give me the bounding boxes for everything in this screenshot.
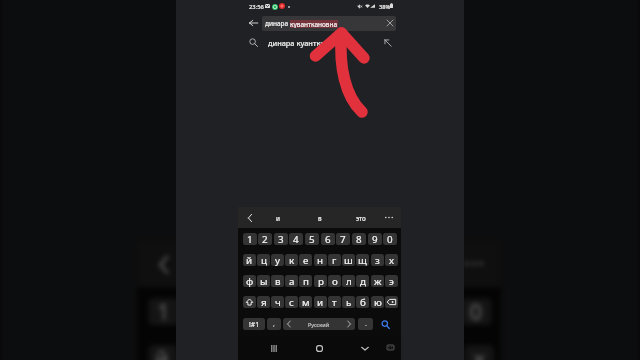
button[interactable]: р: [314, 275, 327, 287]
staticText: ш: [344, 254, 353, 266]
button[interactable]: й: [243, 254, 256, 266]
staticText: 4: [293, 233, 299, 245]
button[interactable]: г: [338, 345, 367, 360]
button[interactable]: п: [299, 275, 312, 287]
button[interactable]: з: [371, 254, 384, 266]
button[interactable]: ц: [257, 254, 270, 266]
button[interactable]: м: [299, 296, 312, 308]
button[interactable]: 1: [148, 298, 179, 325]
button[interactable]: ,: [267, 318, 281, 330]
button[interactable]: 7: [356, 298, 387, 325]
staticText: э: [389, 275, 394, 287]
button[interactable]: Space, Russian: [283, 318, 355, 330]
button[interactable]: Recent apps: [267, 341, 281, 355]
button[interactable]: 2: [258, 233, 272, 245]
button[interactable]: 3: [217, 298, 249, 325]
staticText: это: [400, 256, 423, 274]
button[interactable]: г: [328, 254, 341, 266]
button[interactable]: я: [257, 296, 270, 308]
button[interactable]: в: [271, 275, 284, 287]
button[interactable]: 6: [322, 298, 353, 325]
button[interactable]: у: [211, 345, 240, 360]
button[interactable]: о: [328, 275, 341, 287]
button[interactable]: е: [273, 345, 302, 360]
button[interactable]: ы: [257, 275, 270, 287]
button[interactable]: к: [285, 254, 298, 266]
button[interactable]: !#1: [243, 318, 265, 330]
staticText: ы: [260, 275, 268, 287]
button[interactable]: Clear search: [382, 15, 398, 31]
button[interactable]: ш: [369, 345, 398, 360]
button[interactable]: 6: [321, 233, 335, 245]
button[interactable]: и: [186, 240, 266, 287]
button[interactable]: с: [285, 296, 298, 308]
button[interactable]: это: [371, 240, 452, 287]
button[interactable]: 5: [305, 233, 319, 245]
button[interactable]: 8: [352, 233, 366, 245]
button[interactable]: Previous suggestions: [144, 240, 184, 287]
button[interactable]: б: [356, 296, 369, 308]
button[interactable]: Back: [243, 15, 263, 31]
button[interactable]: 1: [243, 233, 257, 245]
button[interactable]: 3: [274, 233, 288, 245]
button[interactable]: 0: [460, 298, 492, 325]
button[interactable]: ш: [342, 254, 355, 266]
button[interactable]: т: [328, 296, 341, 308]
button[interactable]: в: [280, 240, 360, 287]
button[interactable]: в: [302, 207, 338, 228]
button[interactable]: д: [356, 275, 369, 287]
button[interactable]: х: [465, 345, 494, 360]
button[interactable]: 7: [336, 233, 350, 245]
button[interactable]: Switch keyboard: [384, 341, 396, 353]
staticText: х: [474, 345, 487, 360]
button[interactable]: Previous suggestions: [241, 207, 259, 228]
button[interactable]: More options: [454, 240, 494, 287]
button[interactable]: 5: [287, 298, 318, 325]
button[interactable]: ч: [271, 296, 284, 308]
button[interactable]: ь: [342, 296, 355, 308]
button[interactable]: й: [148, 345, 177, 360]
button[interactable]: е: [299, 254, 312, 266]
button[interactable]: 4: [289, 233, 303, 245]
button[interactable]: Backspace: [385, 296, 398, 308]
staticText: б: [360, 296, 366, 308]
button[interactable]: Hide keyboard: [358, 341, 372, 355]
button[interactable]: л: [342, 275, 355, 287]
button[interactable]: Shift: [243, 296, 256, 308]
staticText: н: [317, 254, 324, 266]
button[interactable]: Home: [312, 341, 326, 355]
button[interactable]: щ: [400, 345, 429, 360]
button[interactable]: щ: [356, 254, 369, 266]
button[interactable]: 9: [368, 233, 382, 245]
button[interactable]: ж: [371, 275, 384, 287]
button[interactable]: н: [314, 254, 327, 266]
button[interactable]: Search: [375, 318, 396, 330]
button[interactable]: ю: [371, 296, 384, 308]
button[interactable]: н: [307, 345, 336, 360]
button[interactable]: динара куантканово: [238, 33, 401, 52]
button[interactable]: это: [343, 207, 379, 228]
staticText: 3: [278, 233, 284, 245]
staticText: в: [315, 256, 324, 274]
button[interactable]: а: [285, 275, 298, 287]
button[interactable]: 4: [251, 298, 282, 325]
staticText: и: [317, 296, 324, 308]
button[interactable]: .: [358, 318, 373, 330]
button[interactable]: х: [385, 254, 398, 266]
button[interactable]: Insert suggestion: [379, 34, 397, 52]
button[interactable]: 8: [391, 298, 423, 325]
button[interactable]: и: [314, 296, 327, 308]
button[interactable]: More options: [380, 207, 398, 228]
button[interactable]: у: [271, 254, 284, 266]
button[interactable]: 0: [383, 233, 397, 245]
button[interactable]: э: [385, 275, 398, 287]
button[interactable]: и: [260, 207, 296, 228]
button[interactable]: ф: [243, 275, 256, 287]
staticText: ч: [275, 296, 281, 308]
button[interactable]: динара: [262, 16, 396, 31]
